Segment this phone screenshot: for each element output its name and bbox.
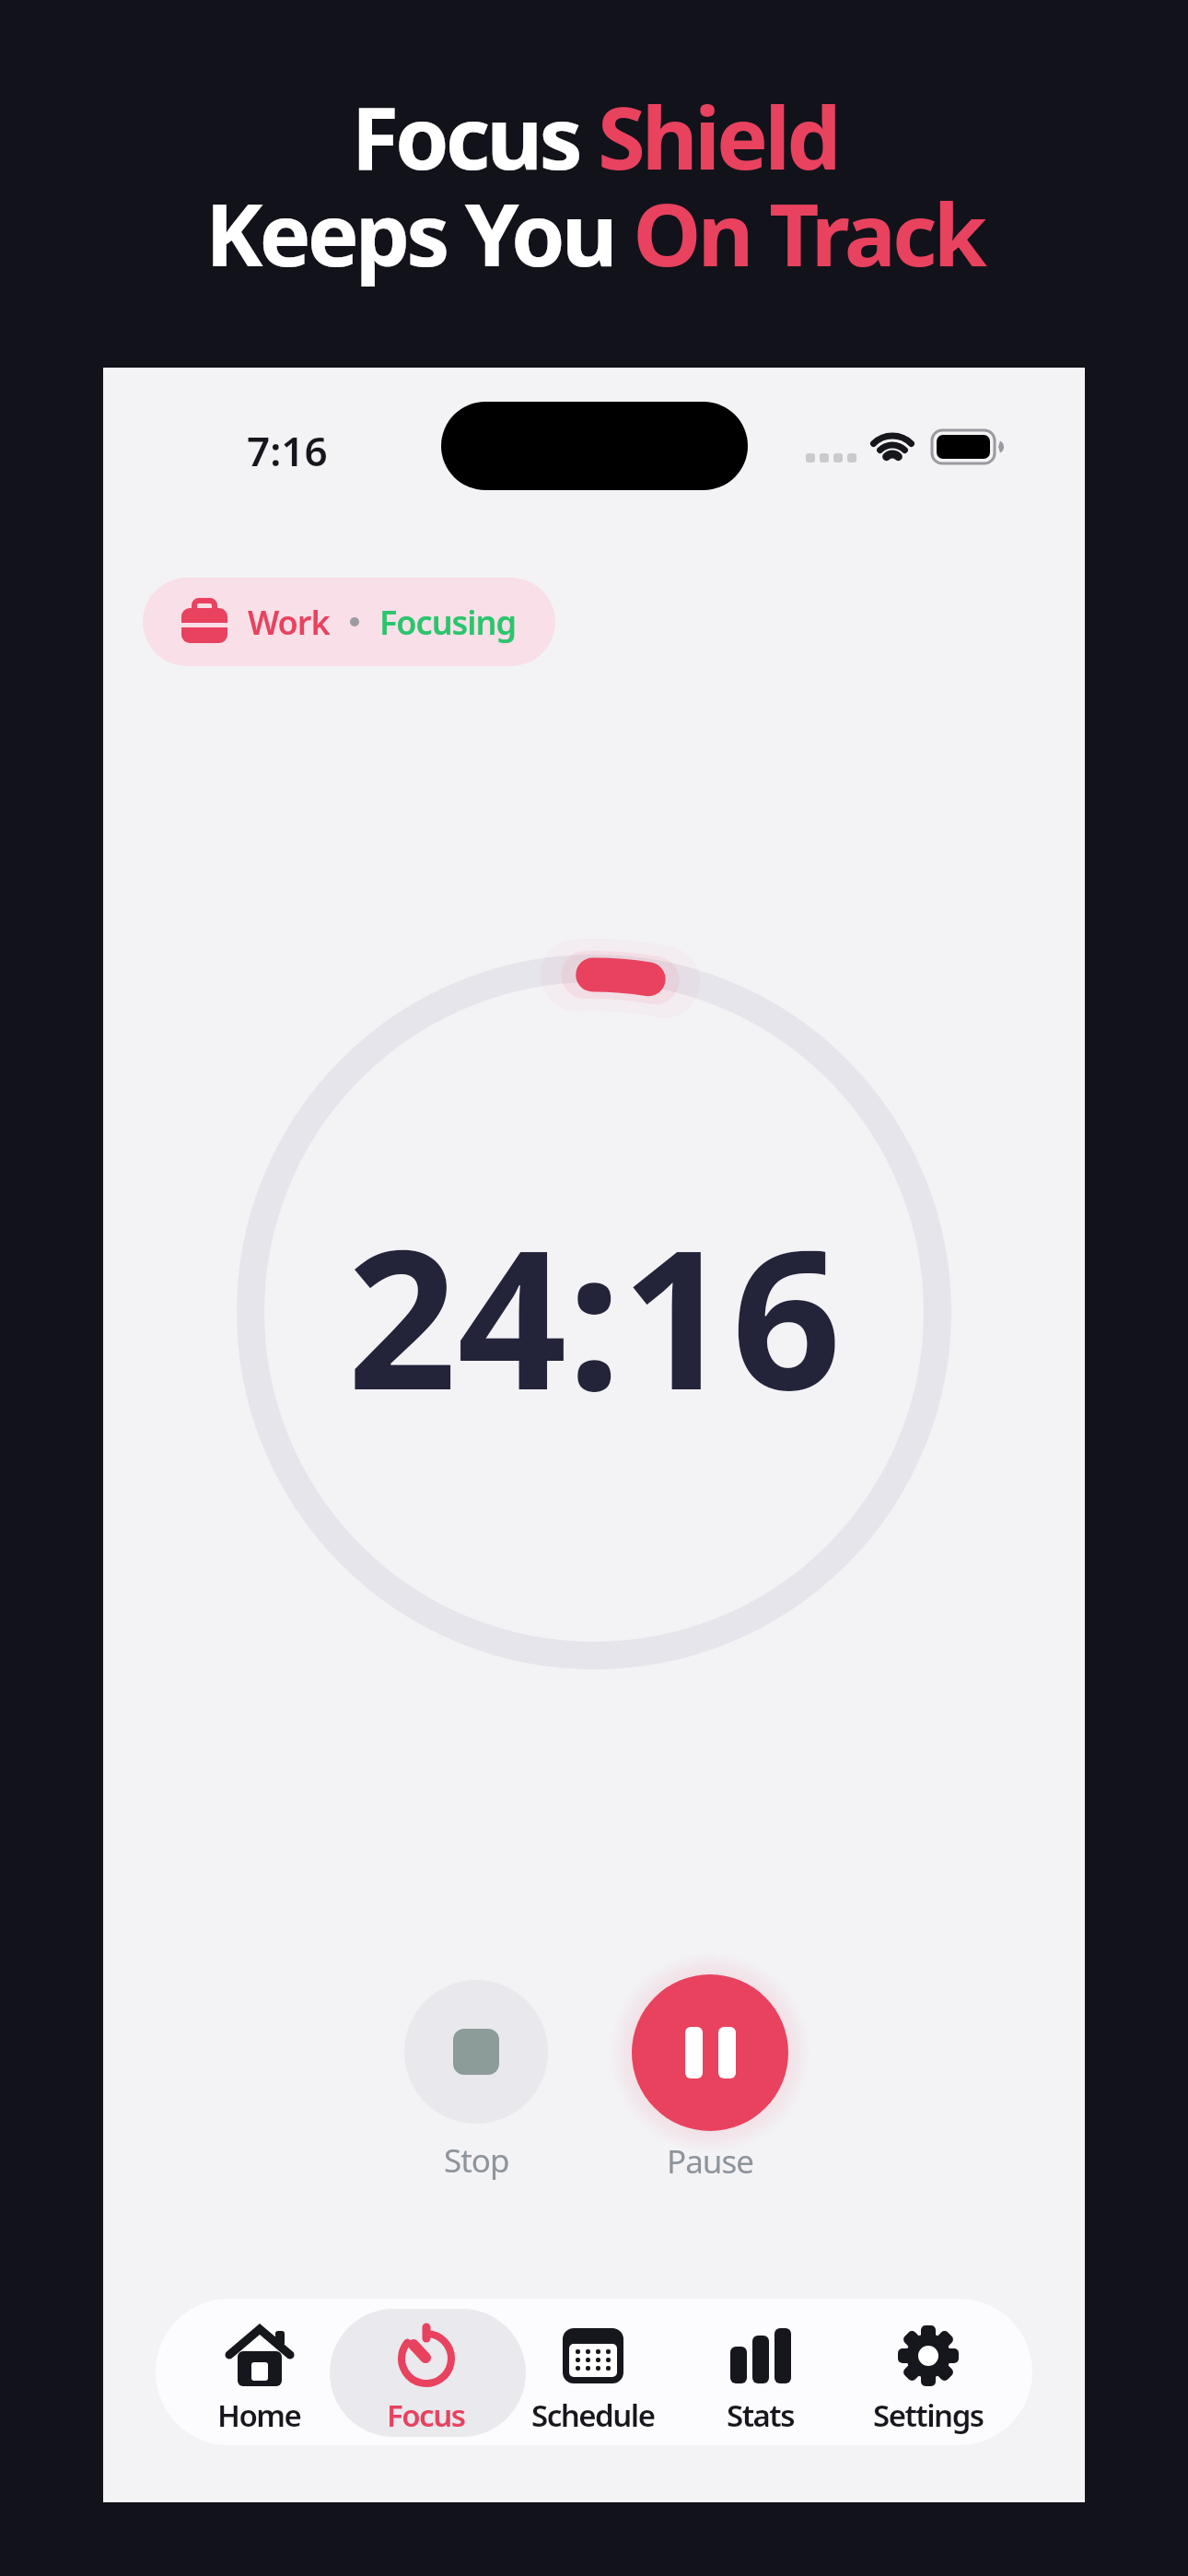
button[interactable]: Schedule bbox=[509, 2299, 677, 2445]
button[interactable]: Work bbox=[143, 578, 555, 666]
staticText: Settings bbox=[873, 2395, 984, 2436]
staticText: Home bbox=[217, 2395, 301, 2436]
button[interactable] bbox=[404, 1980, 548, 2124]
button[interactable]: Home bbox=[176, 2299, 343, 2445]
staticText: Focusing bbox=[379, 600, 517, 645]
staticText: Focus Shield Keeps You On Track bbox=[205, 77, 984, 291]
staticText: Stop bbox=[444, 2138, 509, 2183]
staticText: Stats bbox=[727, 2395, 795, 2436]
staticText: 24:16 bbox=[347, 1185, 842, 1446]
button[interactable] bbox=[632, 1974, 788, 2131]
staticText: Focus bbox=[387, 2395, 465, 2436]
staticText: Work bbox=[248, 600, 330, 645]
button[interactable]: Settings bbox=[844, 2299, 1012, 2445]
button[interactable]: Focus bbox=[343, 2299, 509, 2445]
staticText: 7:16 bbox=[247, 423, 328, 474]
staticText: Schedule bbox=[531, 2395, 655, 2436]
staticText: Pause bbox=[667, 2139, 753, 2184]
button[interactable]: Stats bbox=[677, 2299, 844, 2445]
